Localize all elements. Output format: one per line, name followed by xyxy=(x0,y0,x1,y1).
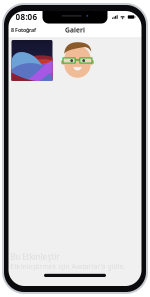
staticText: Galeri xyxy=(65,26,85,34)
staticText: Etkinleştirmek için Avatarlar'a gidin. xyxy=(10,262,125,271)
staticText: 8 Fotoğraf xyxy=(11,26,36,34)
staticText: 08:06 xyxy=(15,12,37,22)
button[interactable]: Avatar xyxy=(57,40,97,80)
staticText: Bu Etkinleştir xyxy=(10,251,59,262)
button[interactable]: 8 Fotoğraf xyxy=(10,25,36,35)
button[interactable]: Fotoğraf xyxy=(11,40,52,81)
